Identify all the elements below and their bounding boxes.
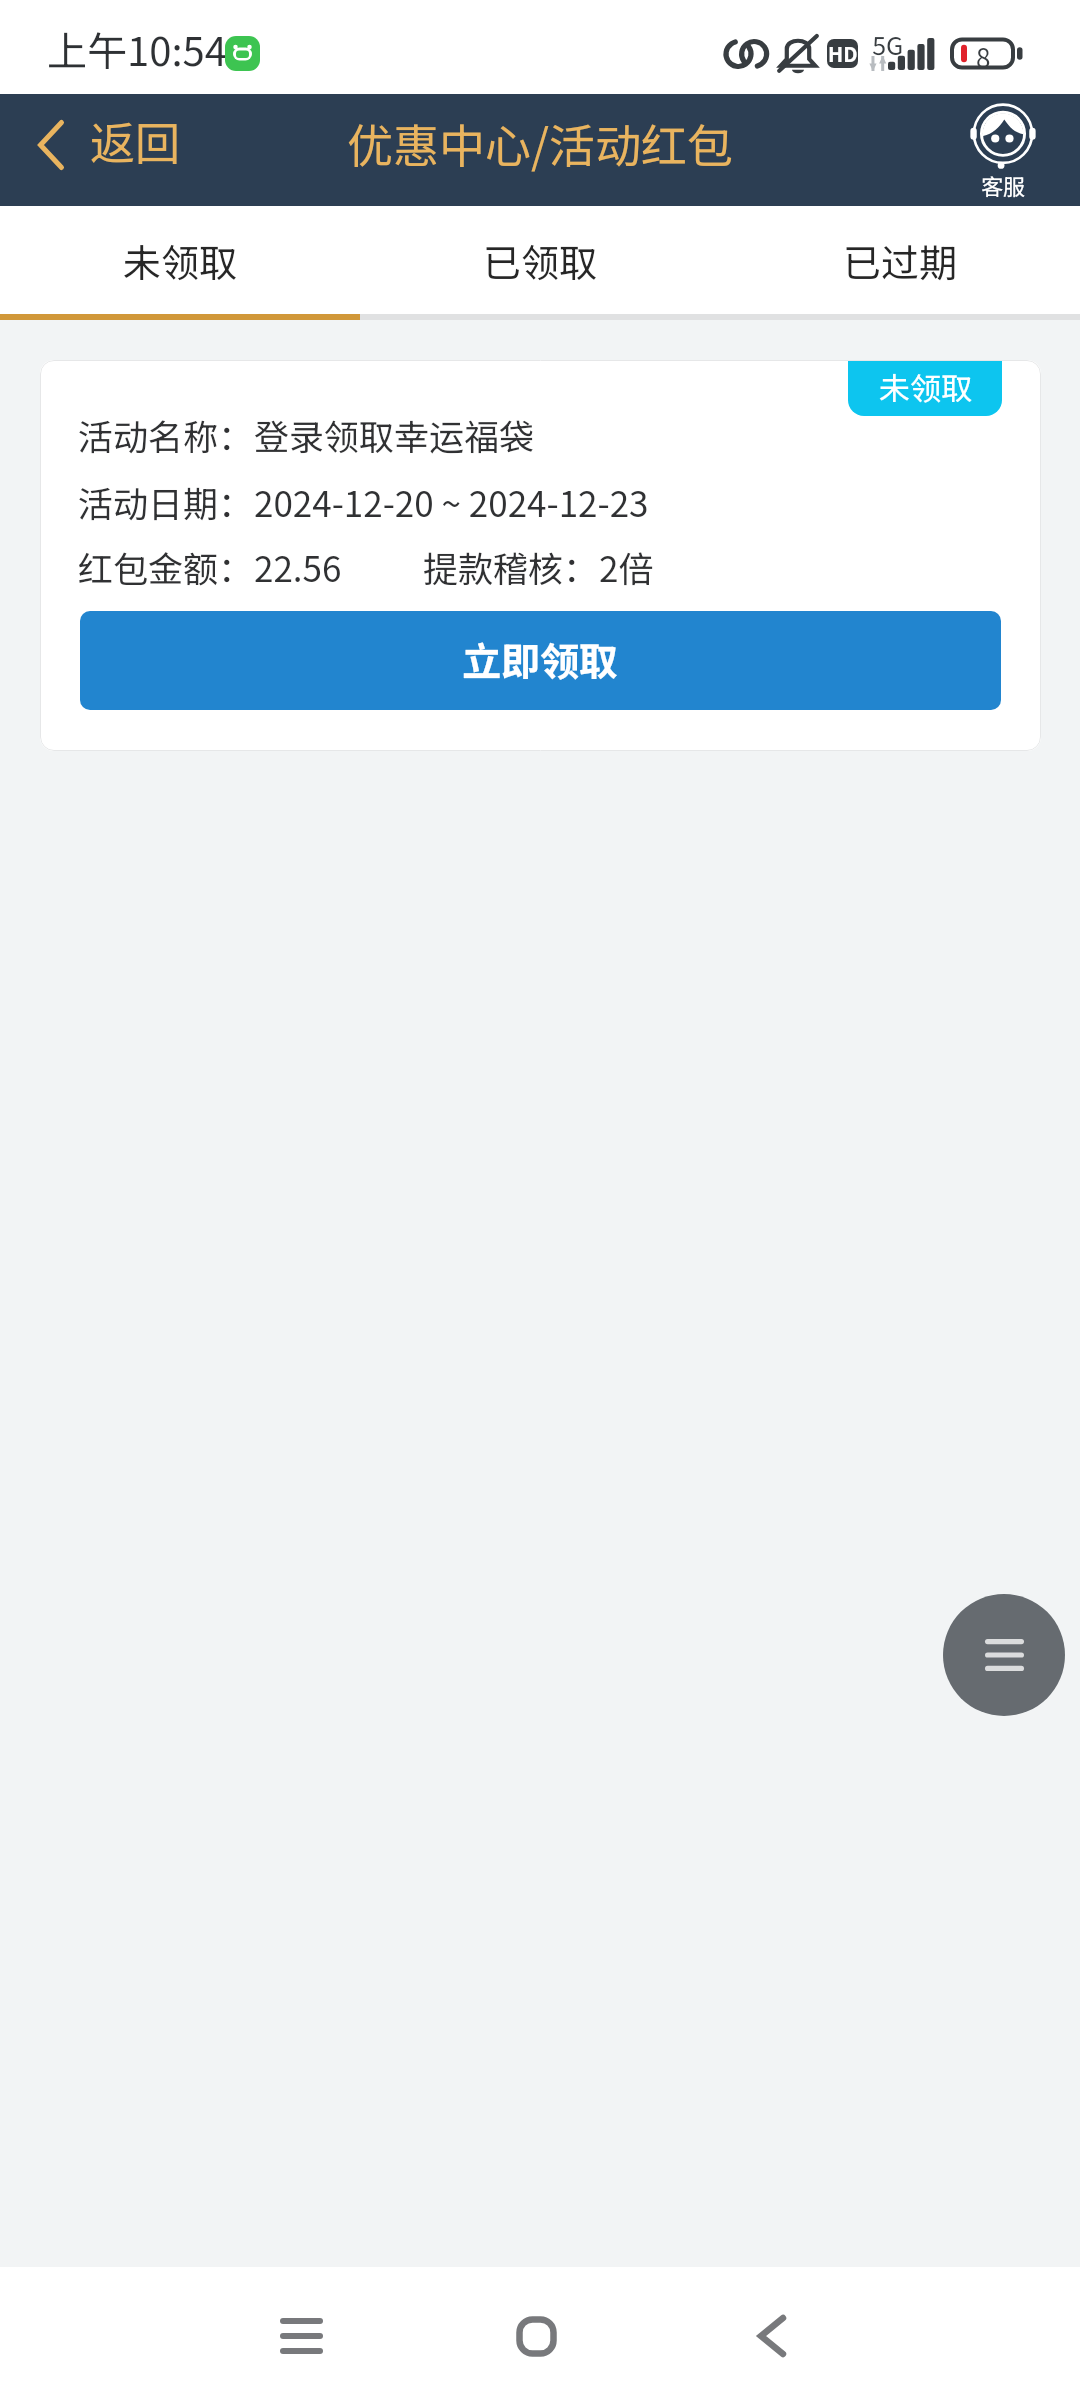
staticText: 未领取 (123, 233, 238, 288)
button[interactable]: Back (712, 2276, 832, 2396)
button[interactable]: 立即领取 (80, 611, 1001, 710)
staticText: 登录领取幸运福袋 (254, 409, 535, 460)
staticText: 立即领取 (462, 631, 619, 687)
button[interactable]: Menu (943, 1594, 1065, 1716)
staticText: 2倍 (599, 541, 654, 592)
staticText: 活动名称： (78, 409, 254, 460)
staticText: 22.56 (254, 541, 342, 592)
staticText: HD (828, 39, 858, 68)
staticText: 提款稽核： (423, 541, 599, 592)
button[interactable]: Recent apps (241, 2276, 361, 2396)
staticText: 优惠中心/活动红包 (347, 110, 734, 177)
staticText: 上午10:54 (47, 20, 227, 78)
button[interactable]: 已过期 (720, 206, 1080, 320)
staticText: 已领取 (483, 233, 598, 288)
button[interactable]: 未领取 (40, 360, 1041, 751)
staticText: 未领取 (879, 364, 972, 409)
button[interactable]: 返回 (0, 94, 205, 206)
staticText: 已过期 (843, 233, 958, 288)
staticText: 2024-12-20 ~ 2024-12-23 (254, 476, 649, 527)
button[interactable]: 已领取 (360, 206, 720, 320)
staticText: 8 (976, 38, 991, 69)
button[interactable]: 未领取 (0, 206, 360, 320)
staticText: 活动日期： (78, 476, 254, 527)
staticText: 返回 (90, 108, 181, 173)
button[interactable]: Home (476, 2276, 596, 2396)
button[interactable]: Customer service (971, 94, 1035, 206)
staticText: 客服 (981, 169, 1026, 201)
staticText: 红包金额： (78, 541, 254, 592)
staticText: 5G (872, 26, 904, 62)
